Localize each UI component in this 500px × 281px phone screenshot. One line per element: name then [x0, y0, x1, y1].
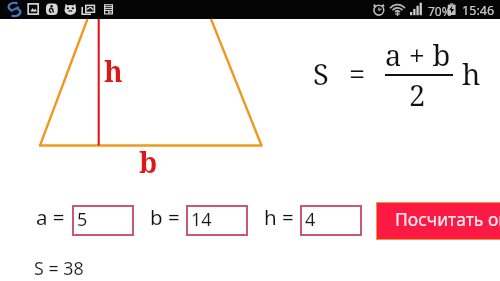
staticText: S	[313, 54, 329, 93]
staticText: b	[139, 143, 158, 181]
staticText: 5	[77, 207, 88, 232]
staticText: a + b	[385, 35, 451, 74]
button[interactable]: 4	[300, 205, 362, 236]
staticText: 14	[191, 207, 212, 232]
staticText: 4	[305, 207, 316, 232]
staticText: h	[462, 54, 481, 93]
staticText: a =	[36, 203, 65, 231]
staticText: b =	[150, 203, 180, 231]
staticText: =	[349, 54, 366, 93]
staticText: 2	[409, 75, 426, 114]
staticText: Посчитать ок	[395, 207, 500, 231]
staticText: h	[104, 52, 123, 90]
other: Trapezoid diagram with height h and base…	[30, 19, 275, 159]
button[interactable]: 14	[186, 205, 248, 236]
staticText: 15:46	[462, 2, 495, 19]
staticText: h =	[264, 203, 294, 231]
button[interactable]: 5	[72, 205, 134, 236]
staticText: S = 38	[34, 256, 84, 280]
staticText: 70%	[428, 3, 452, 19]
button[interactable]: Посчитать ок	[377, 203, 500, 239]
other: Status bar	[0, 0, 500, 19]
